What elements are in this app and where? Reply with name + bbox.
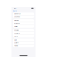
button[interactable]: News (13, 44, 34, 47)
staticText: Mail (14, 39, 16, 41)
button[interactable]: Display (13, 19, 34, 22)
staticText: General (14, 13, 20, 15)
staticText: Display (14, 20, 19, 21)
button[interactable]: Sounds (13, 15, 34, 18)
staticText: Wallet (14, 25, 17, 27)
button[interactable]: Wallet (13, 25, 34, 28)
button[interactable]: Mail (13, 39, 34, 42)
staticText: Privacy (14, 23, 20, 24)
button[interactable]: Safari (13, 41, 34, 44)
staticText: Safari (14, 42, 18, 44)
staticText: Back (13, 10, 17, 12)
button[interactable]: Camera (13, 32, 34, 35)
button[interactable]: Privacy (13, 22, 34, 25)
button[interactable]: Music (13, 35, 34, 37)
button[interactable]: Photos (13, 29, 34, 32)
staticText: News (14, 45, 18, 47)
staticText: Music (14, 35, 18, 37)
button[interactable]: Back (13, 10, 17, 12)
staticText: Photos (14, 29, 19, 31)
button[interactable]: General (13, 12, 34, 15)
staticText: Camera (14, 32, 20, 34)
staticText: Sounds (14, 16, 20, 18)
staticText: 9:41 (13, 7, 16, 9)
